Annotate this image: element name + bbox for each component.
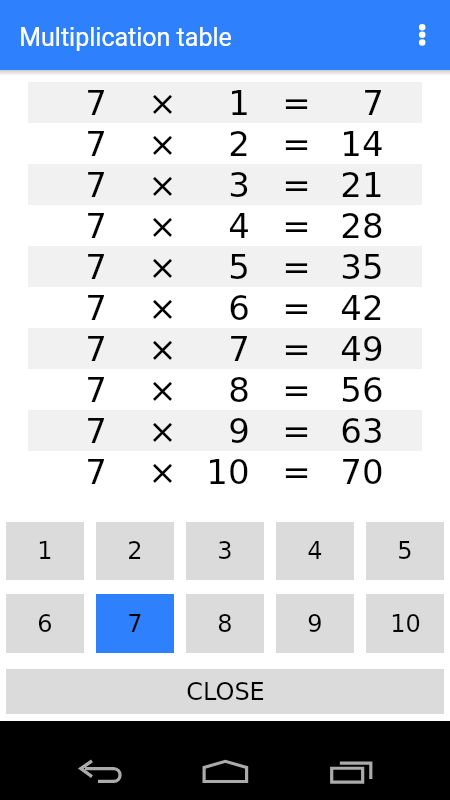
- button[interactable]: 7: [28, 287, 422, 328]
- staticText: ×: [148, 247, 177, 287]
- button[interactable]: More options: [398, 11, 446, 59]
- staticText: ×: [148, 165, 177, 205]
- staticText: =: [282, 452, 311, 492]
- staticText: Multiplication table: [19, 23, 232, 52]
- staticText: 8: [217, 610, 233, 638]
- button[interactable]: 7: [28, 82, 422, 123]
- staticText: 7: [85, 247, 107, 287]
- staticText: 42: [340, 288, 384, 328]
- staticText: 7: [85, 124, 107, 164]
- button[interactable]: Recent apps: [320, 751, 384, 791]
- staticText: 2: [228, 124, 250, 164]
- staticText: 7: [85, 370, 107, 410]
- staticText: 10: [390, 610, 421, 638]
- staticText: 1: [228, 83, 250, 123]
- staticText: 10: [206, 452, 250, 492]
- button[interactable]: 1: [6, 522, 84, 580]
- button[interactable]: Back: [70, 751, 130, 791]
- staticText: =: [282, 165, 311, 205]
- button[interactable]: 6: [6, 594, 84, 653]
- staticText: 3: [228, 165, 250, 205]
- staticText: 21: [340, 165, 384, 205]
- button[interactable]: CLOSE: [6, 669, 444, 714]
- staticText: 5: [228, 247, 250, 287]
- staticText: 7: [85, 288, 107, 328]
- staticText: =: [282, 411, 311, 451]
- staticText: 9: [228, 411, 250, 451]
- staticText: =: [282, 124, 311, 164]
- staticText: 70: [340, 452, 384, 492]
- staticText: 4: [307, 537, 323, 565]
- button[interactable]: 7: [28, 328, 422, 369]
- staticText: =: [282, 83, 311, 123]
- staticText: ×: [148, 452, 177, 492]
- staticText: =: [282, 288, 311, 328]
- button[interactable]: 2: [96, 522, 174, 580]
- button[interactable]: 10: [366, 594, 444, 653]
- staticText: =: [282, 247, 311, 287]
- staticText: ×: [148, 83, 177, 123]
- staticText: 3: [217, 537, 233, 565]
- button[interactable]: Home: [193, 751, 257, 791]
- staticText: 7: [85, 165, 107, 205]
- staticText: ×: [148, 370, 177, 410]
- staticText: ×: [148, 411, 177, 451]
- button[interactable]: 5: [366, 522, 444, 580]
- staticText: 5: [397, 537, 413, 565]
- staticText: 28: [340, 206, 384, 246]
- staticText: 6: [228, 288, 250, 328]
- staticText: ×: [148, 124, 177, 164]
- staticText: 7: [85, 452, 107, 492]
- staticText: ×: [148, 288, 177, 328]
- staticText: ×: [148, 329, 177, 369]
- staticText: 8: [228, 370, 250, 410]
- staticText: 4: [228, 206, 250, 246]
- staticText: 2: [127, 537, 143, 565]
- button[interactable]: 7: [28, 205, 422, 246]
- staticText: =: [282, 370, 311, 410]
- staticText: 1: [37, 537, 53, 565]
- staticText: 14: [340, 124, 384, 164]
- staticText: 6: [37, 610, 53, 638]
- staticText: 63: [340, 411, 384, 451]
- button[interactable]: 7: [28, 451, 422, 492]
- button[interactable]: 9: [276, 594, 354, 653]
- staticText: 7: [85, 411, 107, 451]
- button[interactable]: 7: [28, 246, 422, 287]
- staticText: CLOSE: [186, 678, 265, 706]
- button[interactable]: 7: [28, 164, 422, 205]
- staticText: =: [282, 206, 311, 246]
- staticText: 7: [85, 83, 107, 123]
- button[interactable]: 4: [276, 522, 354, 580]
- button[interactable]: 7: [96, 594, 174, 653]
- staticText: 7: [85, 329, 107, 369]
- staticText: 9: [307, 610, 323, 638]
- button[interactable]: 8: [186, 594, 264, 653]
- button[interactable]: 7: [28, 369, 422, 410]
- staticText: 7: [127, 610, 143, 638]
- staticText: 56: [340, 370, 384, 410]
- staticText: ×: [148, 206, 177, 246]
- staticText: 35: [340, 247, 384, 287]
- staticText: 49: [340, 329, 384, 369]
- button[interactable]: 7: [28, 123, 422, 164]
- button[interactable]: 3: [186, 522, 264, 580]
- button[interactable]: 7: [28, 410, 422, 451]
- staticText: 7: [85, 206, 107, 246]
- staticText: 7: [362, 83, 384, 123]
- staticText: =: [282, 329, 311, 369]
- staticText: 7: [228, 329, 250, 369]
